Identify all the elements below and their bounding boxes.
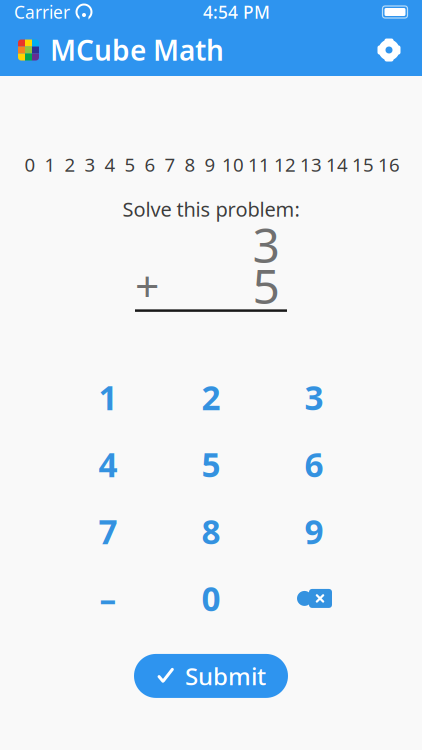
button[interactable]: 1 — [56, 364, 159, 431]
button[interactable]: Submit — [134, 654, 288, 698]
button[interactable]: – — [56, 565, 159, 632]
staticText: 4:54 PM — [203, 0, 270, 23]
staticText: 6 — [304, 442, 323, 487]
staticText: 13 — [300, 152, 322, 177]
staticText: 12 — [274, 152, 296, 177]
staticText: 7 — [164, 152, 175, 177]
button[interactable]: 5 — [159, 431, 262, 498]
button[interactable]: 3 — [262, 364, 365, 431]
staticText: 4 — [98, 442, 117, 487]
staticText: 3 — [252, 212, 279, 276]
staticText: Carrier — [14, 0, 70, 23]
staticText: 8 — [201, 509, 220, 554]
staticText: MCube Math — [50, 31, 224, 69]
staticText: – — [99, 576, 116, 621]
button[interactable]: 2 — [159, 364, 262, 431]
staticText: Solve this problem: — [122, 196, 299, 222]
staticText: 10 — [222, 152, 244, 177]
staticText: 0 — [24, 152, 35, 177]
staticText: 11 — [248, 152, 270, 177]
staticText: 1 — [98, 375, 117, 420]
staticText: 5 — [201, 442, 220, 487]
staticText: 3 — [84, 152, 95, 177]
staticText: 5 — [252, 253, 279, 317]
staticText: 9 — [204, 152, 215, 177]
button[interactable]: Delete — [262, 565, 365, 632]
button[interactable]: Settings — [372, 33, 406, 67]
staticText: 2 — [64, 152, 75, 177]
staticText: 9 — [304, 509, 323, 554]
staticText: 0 — [201, 576, 220, 621]
button[interactable]: 6 — [262, 431, 365, 498]
button[interactable]: 8 — [159, 498, 262, 565]
staticText: + — [135, 257, 159, 314]
staticText: 8 — [184, 152, 195, 177]
button[interactable]: 9 — [262, 498, 365, 565]
staticText: 6 — [144, 152, 155, 177]
staticText: Submit — [185, 660, 266, 692]
staticText: 16 — [378, 152, 400, 177]
button[interactable]: 4 — [56, 431, 159, 498]
staticText: 15 — [352, 152, 374, 177]
button[interactable]: 0 — [159, 565, 262, 632]
staticText: 1 — [44, 152, 55, 177]
staticText: 5 — [124, 152, 135, 177]
staticText: 14 — [326, 152, 348, 177]
staticText: 2 — [201, 375, 220, 420]
button[interactable]: 7 — [56, 498, 159, 565]
staticText: 3 — [304, 375, 323, 420]
staticText: 4 — [104, 152, 115, 177]
staticText: 7 — [98, 509, 117, 554]
